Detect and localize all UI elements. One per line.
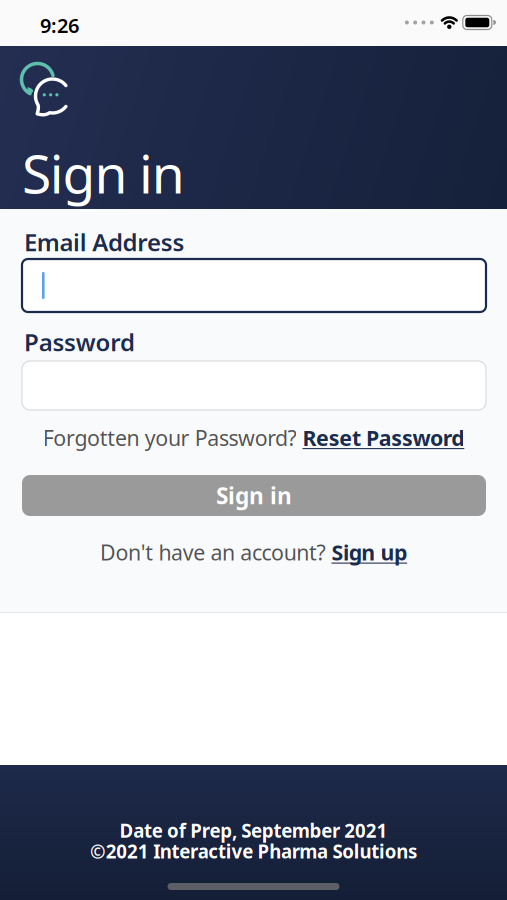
staticText: Date of Prep, September 2021 (119, 818, 387, 843)
staticText: Sign up (331, 538, 407, 566)
button[interactable]: Reset Password (302, 423, 464, 452)
staticText: ©2021 Interactive Pharma Solutions (90, 839, 417, 864)
button[interactable]: Password (22, 361, 486, 410)
button[interactable]: Email Address (22, 259, 486, 312)
staticText: Forgotten your Password? (43, 423, 296, 452)
staticText: Sign in (22, 137, 185, 208)
staticText: Password (24, 326, 135, 358)
staticText: Reset Password (302, 423, 464, 452)
staticText: Email Address (24, 226, 184, 258)
button[interactable]: Sign up (331, 538, 407, 566)
staticText: 9:26 (40, 12, 79, 39)
staticText: Sign in (216, 480, 292, 510)
staticText: Don't have an account? (100, 538, 325, 566)
button[interactable]: Sign in (22, 475, 486, 516)
